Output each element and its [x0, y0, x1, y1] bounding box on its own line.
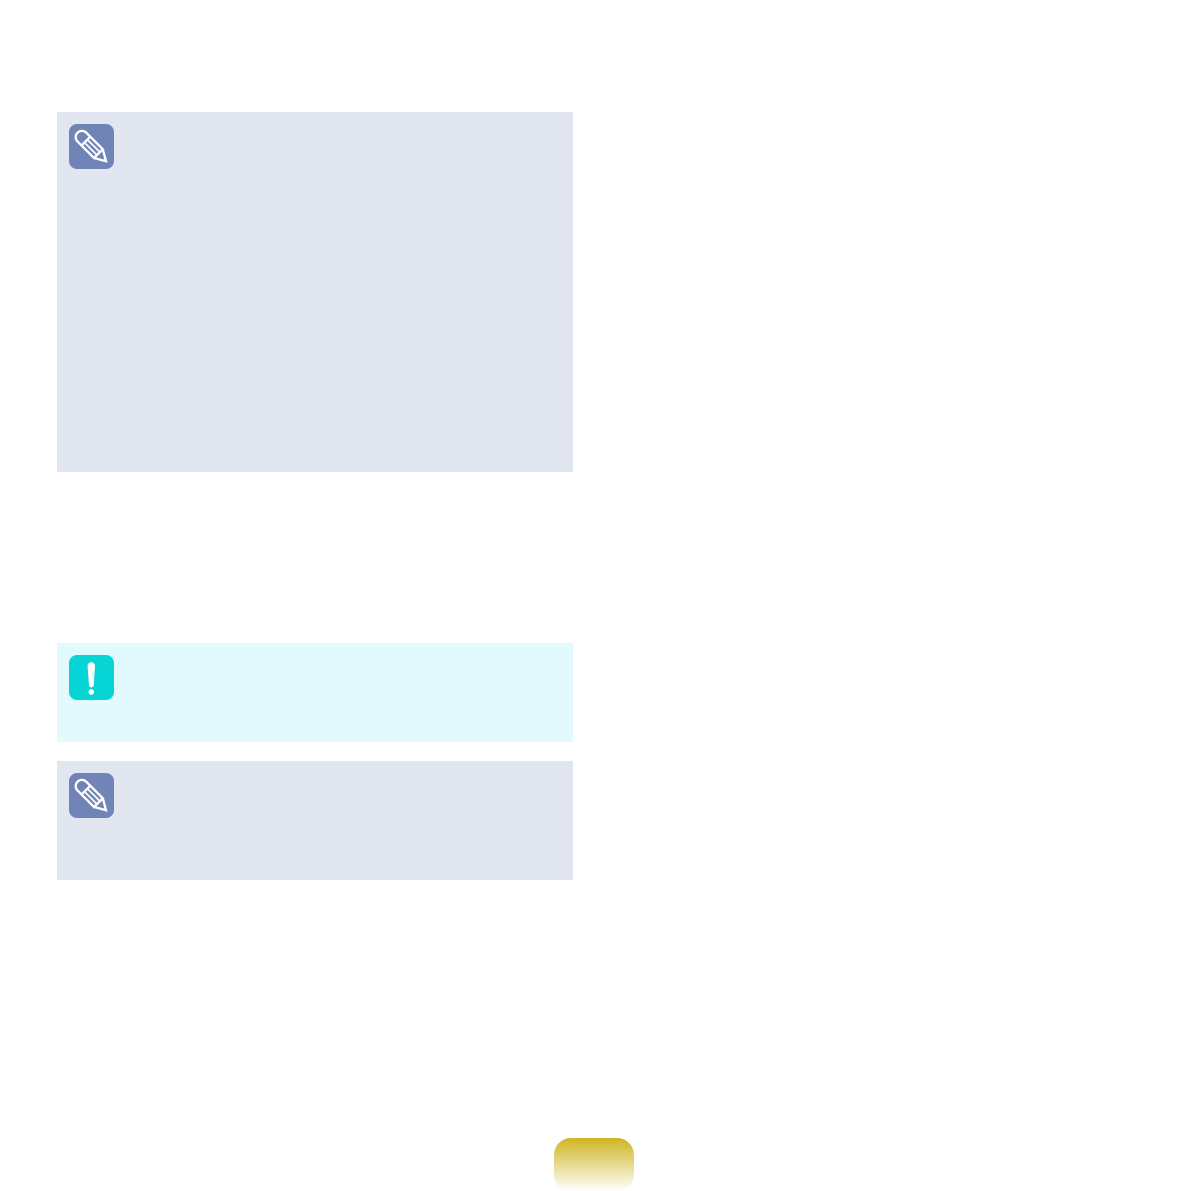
- button[interactable]: Compose: [554, 1138, 634, 1191]
- button[interactable]: Alert: [57, 643, 573, 742]
- button[interactable]: Note: [57, 761, 573, 880]
- button[interactable]: Note: [57, 112, 573, 472]
